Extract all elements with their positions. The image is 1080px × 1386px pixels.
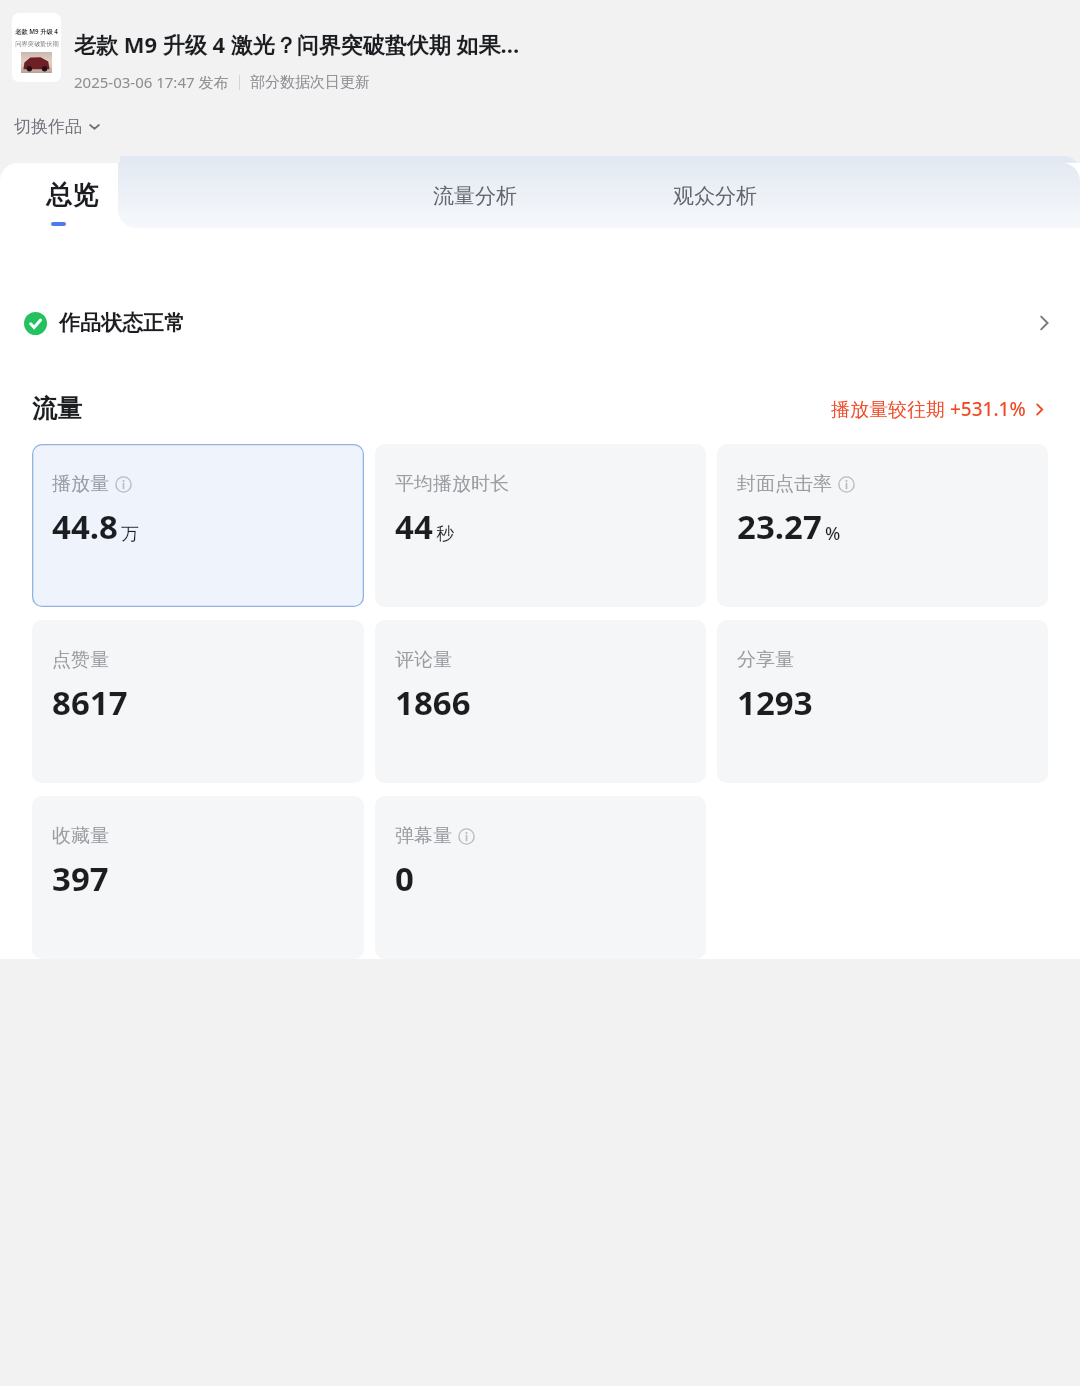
- staticText: 23.27: [737, 504, 822, 549]
- staticText: 秒: [436, 523, 454, 546]
- button[interactable]: 平均播放时长: [375, 444, 706, 607]
- button[interactable]: 切换作品: [12, 111, 105, 142]
- button[interactable]: 评论量: [375, 620, 706, 783]
- button[interactable]: 弹幕量: [375, 796, 706, 959]
- staticText: 8617: [52, 680, 128, 725]
- button[interactable]: 播放量: [32, 444, 364, 607]
- staticText: 老款 M9 升级 4 激光？问界突破蛰伏期 如果…: [74, 29, 520, 59]
- staticText: 评论量: [395, 648, 452, 672]
- staticText: 2025-03-06 17:47 发布: [74, 72, 229, 92]
- staticText: 流量: [32, 393, 82, 424]
- staticText: 作品状态正常: [59, 310, 185, 336]
- staticText: 平均播放时长: [395, 472, 509, 496]
- staticText: %: [825, 521, 841, 546]
- staticText: 播放量: [52, 472, 109, 496]
- button[interactable]: 作品封面: [12, 13, 1066, 92]
- staticText: 封面点击率: [737, 472, 832, 496]
- button[interactable]: 观众分析: [595, 163, 835, 228]
- staticText: 397: [52, 856, 109, 901]
- button[interactable]: 分享量: [717, 620, 1048, 783]
- staticText: 老款 M9 升级 4 激光: [14, 27, 59, 35]
- staticText: 0: [395, 856, 414, 901]
- staticText: 总览: [46, 179, 98, 212]
- staticText: 分享量: [737, 648, 794, 672]
- button[interactable]: 播放量较往期 +531.1%: [831, 396, 1048, 422]
- staticText: 万: [121, 523, 139, 546]
- button[interactable]: 作品状态正常: [0, 285, 1080, 361]
- staticText: 点赞量: [52, 648, 109, 672]
- staticText: 问界突破蛰伏期: [15, 40, 59, 48]
- staticText: 1866: [395, 680, 471, 725]
- staticText: 弹幕量: [395, 824, 452, 848]
- button[interactable]: 收藏量: [32, 796, 364, 959]
- staticText: 收藏量: [52, 824, 109, 848]
- staticText: 流量分析: [433, 183, 517, 209]
- button[interactable]: 总览: [0, 163, 355, 285]
- staticText: 44.8: [52, 504, 118, 549]
- staticText: 部分数据次日更新: [250, 73, 370, 92]
- other: 查看详情: [1034, 313, 1054, 333]
- staticText: 44: [395, 504, 433, 549]
- staticText: 观众分析: [673, 183, 757, 209]
- button[interactable]: 作品封面: [12, 13, 61, 82]
- staticText: 播放量较往期 +531.1%: [831, 396, 1026, 422]
- button[interactable]: 流量分析: [355, 163, 595, 228]
- button[interactable]: 点赞量: [32, 620, 364, 783]
- button[interactable]: 封面点击率: [717, 444, 1048, 607]
- staticText: 1293: [737, 680, 813, 725]
- staticText: 切换作品: [14, 116, 82, 137]
